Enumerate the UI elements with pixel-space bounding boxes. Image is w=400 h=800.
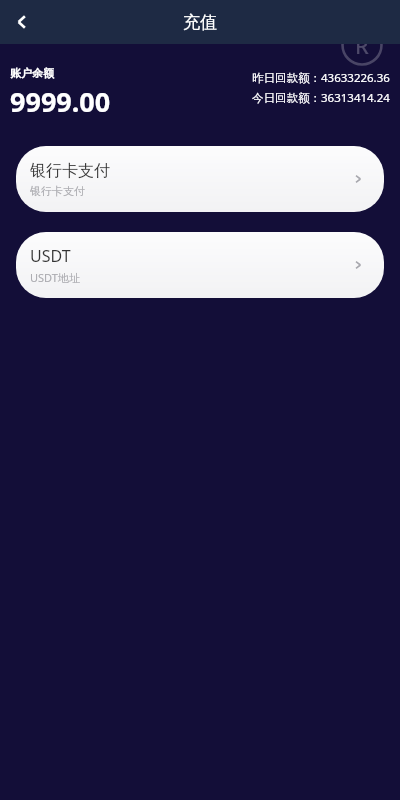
staticText: USDT地址: [30, 270, 80, 285]
staticText: 9999.00: [10, 83, 111, 120]
staticText: 银行卡支付: [30, 161, 110, 181]
button[interactable]: USDT: [16, 232, 384, 298]
staticText: R: [355, 30, 369, 60]
staticText: USDT: [30, 245, 71, 267]
staticText: 充值: [183, 12, 217, 33]
staticText: 昨日回款额：43633226.36: [252, 70, 390, 86]
staticText: 银行卡支付: [30, 184, 85, 198]
button[interactable]: Back: [0, 0, 44, 44]
staticText: 今日回款额：36313414.24: [252, 90, 390, 106]
button[interactable]: 银行卡支付: [16, 146, 384, 212]
staticText: 账户余额: [10, 66, 54, 80]
